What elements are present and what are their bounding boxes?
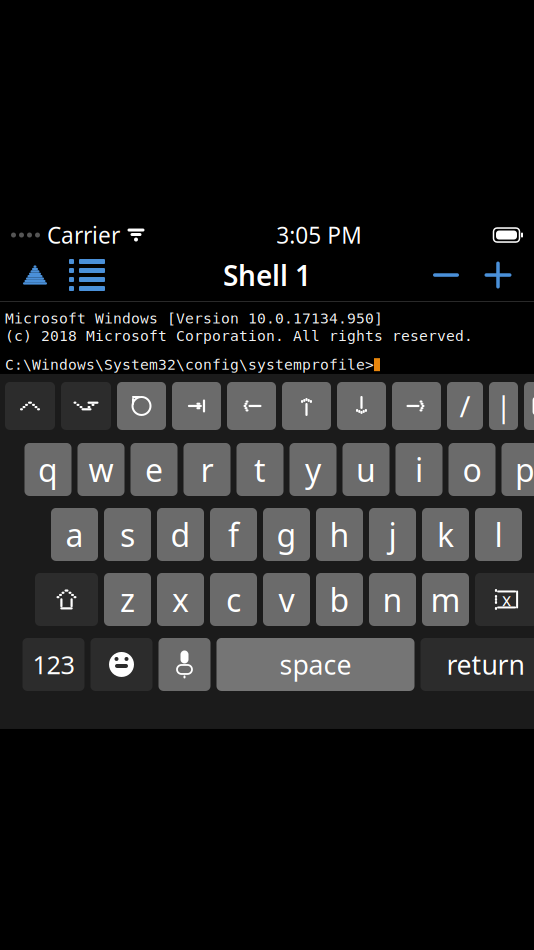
button[interactable]: r [183, 443, 230, 496]
button[interactable]: Left arrow [227, 382, 276, 430]
button[interactable]: Shift [35, 573, 98, 626]
button[interactable]: / [447, 382, 483, 430]
staticText: a [65, 513, 83, 556]
staticText: 3:05 PM [276, 220, 362, 250]
button[interactable]: Emoji [90, 638, 152, 691]
staticText: b [329, 578, 349, 621]
button[interactable]: Close shell [420, 252, 472, 298]
staticText: f [228, 513, 239, 556]
button[interactable]: v [263, 573, 310, 626]
staticText: return [446, 647, 524, 682]
button[interactable]: Tab [172, 382, 221, 430]
button[interactable]: Up arrow [282, 382, 331, 430]
button[interactable]: | [489, 382, 518, 430]
button[interactable]: w [77, 443, 124, 496]
button[interactable]: a [51, 508, 98, 561]
staticText: x [172, 578, 189, 621]
button[interactable]: u [342, 443, 389, 496]
staticText: u [356, 448, 376, 491]
button[interactable]: Option [61, 382, 111, 430]
staticText: x [502, 588, 511, 611]
button[interactable]: e [130, 443, 177, 496]
staticText: / [459, 386, 470, 425]
staticText: r [200, 448, 213, 491]
button[interactable]: n [369, 573, 416, 626]
staticText: y [305, 448, 321, 491]
staticText: v [278, 578, 294, 621]
staticText: g [276, 513, 296, 556]
staticText: s [120, 513, 135, 556]
staticText: C:\Windows\System32\config\systemprofile… [5, 356, 374, 373]
button[interactable]: o [448, 443, 495, 496]
button[interactable]: x [157, 573, 204, 626]
button[interactable]: y [289, 443, 336, 496]
staticText: Carrier [47, 220, 120, 250]
staticText: Microsoft Windows [Version 10.0.17134.95… [5, 310, 383, 327]
button[interactable]: Hide keyboard [524, 382, 534, 430]
button[interactable]: z [104, 573, 151, 626]
button[interactable]: f [210, 508, 257, 561]
button[interactable]: s [104, 508, 151, 561]
staticText: i [415, 448, 423, 491]
button[interactable]: d [157, 508, 204, 561]
button[interactable]: t [236, 443, 283, 496]
button[interactable]: m [422, 573, 469, 626]
staticText: | [495, 386, 511, 425]
button[interactable]: l [475, 508, 522, 561]
staticText: o [462, 448, 481, 491]
staticText: k [437, 513, 454, 556]
button[interactable]: b [316, 573, 363, 626]
button[interactable]: i [395, 443, 442, 496]
staticText: Shell 1 [223, 256, 311, 294]
staticText: d [170, 513, 190, 556]
staticText: w [88, 448, 113, 491]
button[interactable]: Down arrow [337, 382, 386, 430]
button[interactable]: Control [5, 382, 55, 430]
button[interactable]: q [24, 443, 71, 496]
button[interactable]: Send [10, 252, 60, 298]
button[interactable]: 123 [22, 638, 84, 691]
staticText: z [120, 578, 135, 621]
button[interactable]: return [420, 638, 534, 691]
button[interactable]: Delete [475, 573, 534, 626]
staticText: p [515, 448, 534, 491]
staticText: 123 [32, 648, 74, 681]
button[interactable]: p [501, 443, 534, 496]
staticText: c [226, 578, 241, 621]
staticText: q [38, 448, 58, 491]
button[interactable]: space [216, 638, 414, 691]
button[interactable]: Dictate [158, 638, 210, 691]
button[interactable]: h [316, 508, 363, 561]
button[interactable]: History [117, 382, 166, 430]
staticText: e [145, 448, 163, 491]
button[interactable]: c [210, 573, 257, 626]
button[interactable]: j [369, 508, 416, 561]
staticText: j [388, 513, 396, 556]
button[interactable]: k [422, 508, 469, 561]
button[interactable]: New shell [472, 252, 524, 298]
button[interactable]: Right arrow [392, 382, 441, 430]
button[interactable]: Shell list [60, 252, 114, 298]
staticText: t [254, 448, 266, 491]
staticText: h [329, 513, 349, 556]
staticText: l [494, 513, 502, 556]
button[interactable]: g [263, 508, 310, 561]
staticText: n [382, 578, 402, 621]
staticText: (c) 2018 Microsoft Corporation. All righ… [5, 328, 473, 344]
staticText: space [279, 647, 351, 682]
staticText: m [430, 578, 460, 621]
